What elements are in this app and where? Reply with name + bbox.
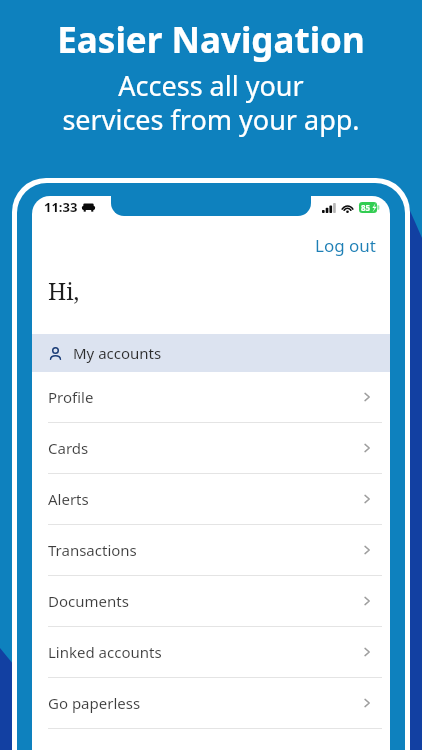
staticText: Documents — [48, 591, 360, 611]
staticText: Transactions — [48, 540, 360, 560]
button[interactable]: Transactions — [32, 525, 390, 575]
button[interactable]: Documents — [32, 576, 390, 626]
button[interactable]: Profile — [32, 372, 390, 422]
staticText: 11:33 — [44, 198, 78, 216]
staticText: Log out — [315, 234, 376, 257]
staticText: 85 — [361, 202, 371, 213]
button[interactable]: Log out — [301, 230, 390, 261]
other: My accounts — [48, 346, 63, 361]
staticText: Access all your services from your app. — [62, 67, 360, 138]
button[interactable]: Alerts — [32, 474, 390, 524]
staticText: Hi, — [48, 275, 80, 306]
staticText: Alerts — [48, 489, 360, 509]
button[interactable]: My accounts — [32, 334, 390, 372]
staticText: Profile — [48, 387, 360, 407]
button[interactable]: Go paperless — [32, 678, 390, 728]
button[interactable]: Cards — [32, 423, 390, 473]
staticText: Go paperless — [48, 693, 360, 713]
button[interactable]: Linked accounts — [32, 627, 390, 677]
staticText: Easier Navigation — [57, 16, 365, 64]
staticText: Linked accounts — [48, 642, 360, 662]
staticText: My accounts — [73, 343, 162, 363]
staticText: Cards — [48, 438, 360, 458]
